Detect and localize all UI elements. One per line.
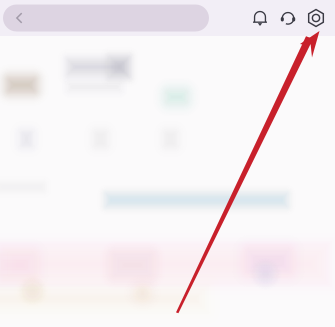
button[interactable]: Notifications — [246, 3, 274, 33]
button[interactable]: Customer service — [274, 3, 302, 33]
button[interactable] — [3, 4, 209, 31]
button[interactable]: Settings — [302, 3, 330, 33]
